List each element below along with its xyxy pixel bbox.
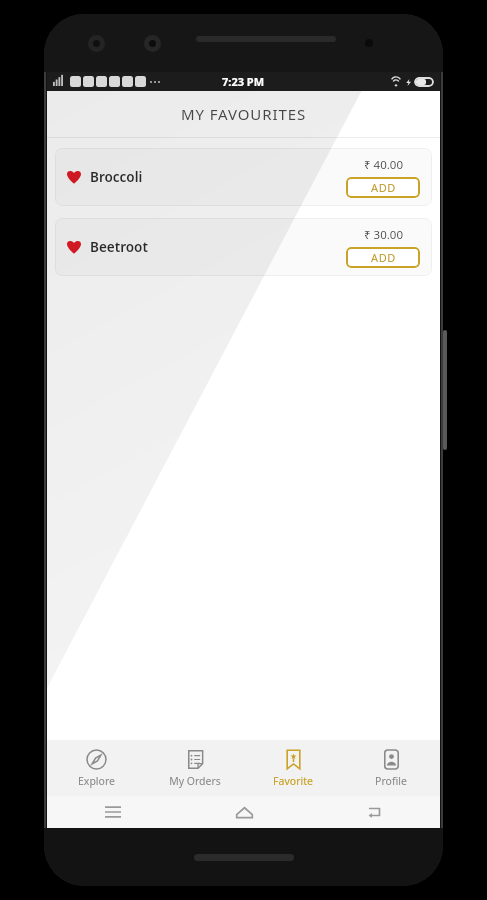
staticText: Profile — [375, 774, 407, 788]
staticText: ₹ 30.00 — [364, 227, 403, 243]
staticText: Favorite — [273, 774, 313, 788]
button[interactable]: Broccoli — [55, 148, 432, 206]
button[interactable]: Explore — [47, 740, 146, 796]
staticText: ADD — [371, 250, 396, 265]
staticText: Broccoli — [90, 168, 143, 186]
staticText: Explore — [78, 774, 115, 788]
button[interactable]: Favorite — [244, 740, 342, 796]
staticText: My Orders — [169, 774, 221, 788]
button[interactable]: My Orders — [146, 740, 244, 796]
button[interactable]: Recent apps — [102, 801, 124, 823]
staticText: ₹ 40.00 — [364, 157, 403, 173]
button[interactable]: ADD — [346, 177, 420, 198]
button[interactable]: Back — [364, 801, 386, 823]
button[interactable]: Home — [233, 801, 255, 823]
staticText: ADD — [371, 180, 396, 195]
staticText: MY FAVOURITES — [181, 104, 307, 124]
button[interactable]: Profile — [342, 740, 440, 796]
button[interactable]: Beetroot — [55, 218, 432, 276]
staticText: 7:23 PM — [222, 74, 265, 89]
button[interactable]: ADD — [346, 247, 420, 268]
staticText: Beetroot — [90, 238, 148, 256]
